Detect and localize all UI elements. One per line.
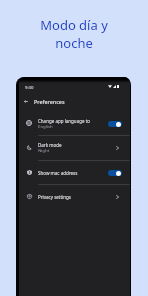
staticText: Night [38, 147, 50, 153]
button[interactable]: Open [113, 143, 122, 152]
staticText: 9:30 [25, 84, 34, 90]
button[interactable]: Dark mode [19, 135, 130, 160]
button[interactable]: Change app language to [19, 111, 130, 136]
staticText: Privacy settings [38, 194, 71, 200]
button[interactable]: Privacy settings [19, 184, 130, 209]
staticText: Preferences [34, 98, 65, 105]
button[interactable]: Show mac address [19, 160, 130, 185]
staticText: Show mac address [38, 170, 78, 176]
staticText: Modo día y noche [40, 16, 108, 52]
button[interactable]: Open [113, 192, 122, 201]
button[interactable]: Back [20, 95, 32, 107]
staticText: English [38, 123, 53, 129]
button[interactable]: Toggle setting [108, 121, 122, 127]
staticText: Change app language to [38, 118, 90, 124]
button[interactable]: Toggle setting [108, 170, 122, 176]
staticText: Dark mode [38, 142, 62, 148]
